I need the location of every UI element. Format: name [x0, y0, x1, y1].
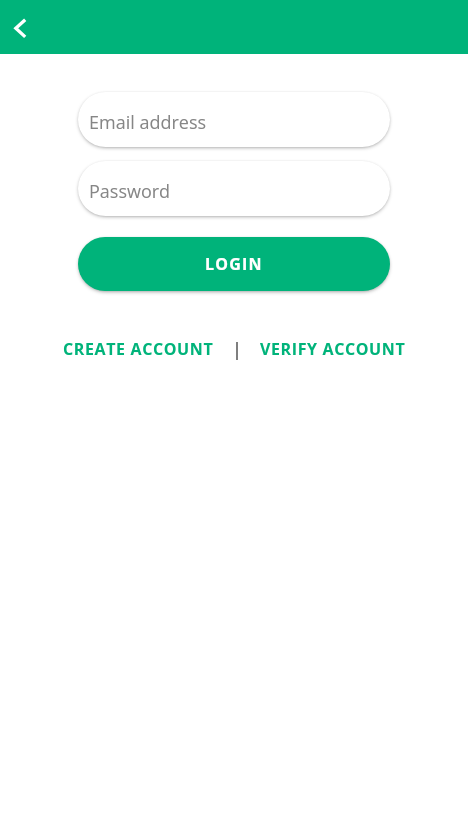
staticText: VERIFY ACCOUNT	[260, 338, 406, 360]
button[interactable]: CREATE ACCOUNT	[58, 332, 219, 366]
staticText: LOGIN	[205, 253, 263, 275]
button[interactable]: Back	[0, 5, 44, 49]
button[interactable]: Email address	[78, 92, 390, 147]
button[interactable]: LOGIN	[78, 237, 390, 291]
staticText: Email address	[89, 110, 207, 135]
button[interactable]: VERIFY ACCOUNT	[255, 332, 411, 366]
staticText: Password	[89, 179, 171, 204]
staticText: CREATE ACCOUNT	[63, 338, 214, 360]
button[interactable]: Password	[78, 161, 390, 216]
